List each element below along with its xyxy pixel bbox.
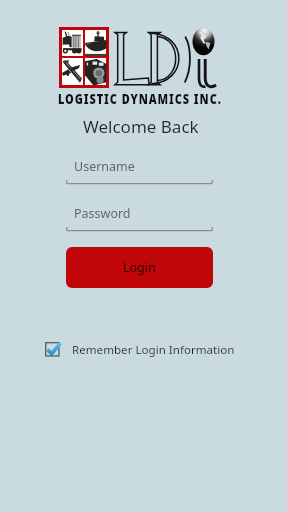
staticText: Username (74, 158, 135, 175)
button[interactable]: Username (66, 158, 213, 185)
staticText: LOGISTIC DYNAMICS INC. (58, 89, 222, 108)
button[interactable]: Password (66, 205, 213, 232)
staticText: Welcome Back (83, 115, 199, 138)
other: Remember login information checkbox (44, 341, 61, 358)
staticText: Login (123, 259, 156, 276)
staticText: Password (74, 205, 131, 222)
staticText: Remember Login Information (72, 342, 235, 358)
button[interactable]: Login (66, 247, 213, 288)
button[interactable]: Remember login information checkbox (42, 339, 237, 360)
